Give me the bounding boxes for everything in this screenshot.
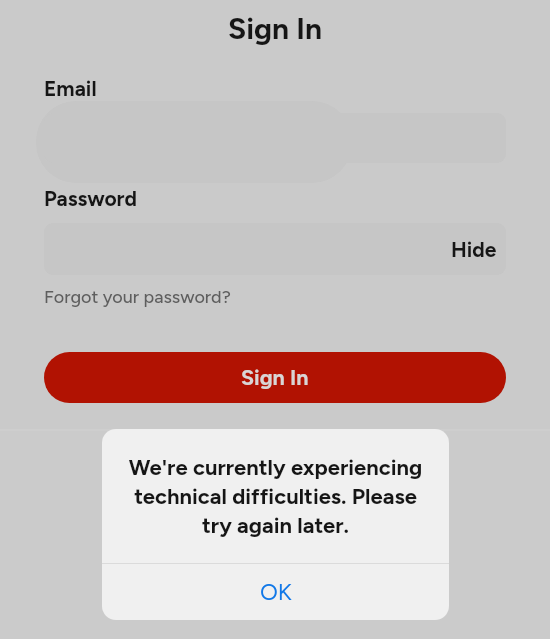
button[interactable]: Hide bbox=[442, 228, 506, 271]
staticText: OK bbox=[260, 578, 292, 606]
staticText: Sign In bbox=[241, 365, 309, 391]
staticText: We're currently experiencing technical d… bbox=[124, 454, 427, 538]
button[interactable]: OK bbox=[102, 564, 449, 620]
staticText: Hide bbox=[451, 237, 497, 262]
button[interactable]: Forgot your password? bbox=[44, 286, 231, 308]
button[interactable]: Sign In bbox=[44, 352, 506, 403]
button[interactable]: Password field bbox=[44, 223, 506, 275]
staticText: Forgot your password? bbox=[44, 286, 231, 308]
staticText: Sign In bbox=[0, 10, 550, 46]
staticText: Password bbox=[44, 186, 138, 211]
staticText: Email bbox=[44, 76, 97, 101]
